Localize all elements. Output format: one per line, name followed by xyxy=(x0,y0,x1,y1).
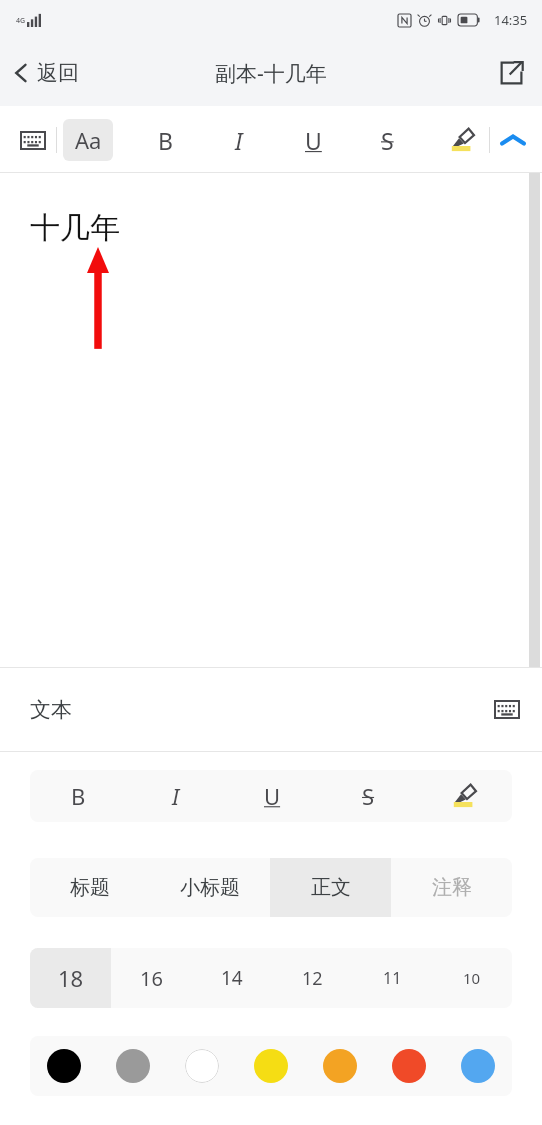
button[interactable]: S xyxy=(320,770,416,822)
button[interactable]: U xyxy=(224,770,320,822)
staticText: 4G xyxy=(16,16,26,26)
button[interactable]: 14 xyxy=(192,948,272,1008)
button[interactable]: Aa xyxy=(63,119,113,161)
staticText: U xyxy=(305,125,322,156)
staticText: 16 xyxy=(140,965,163,992)
button[interactable]: 小标题 xyxy=(150,858,270,917)
staticText: Aa xyxy=(75,125,102,155)
button[interactable]: Color 6 xyxy=(443,1036,512,1096)
button[interactable]: Color 0 xyxy=(30,1036,98,1096)
staticText: 正文 xyxy=(311,875,351,900)
button[interactable]: 注释 xyxy=(391,858,512,917)
staticText: B xyxy=(71,781,86,811)
button[interactable]: I xyxy=(217,117,261,163)
staticText: U xyxy=(264,781,281,811)
button[interactable]: Collapse xyxy=(490,117,536,163)
button[interactable]: S xyxy=(365,117,409,163)
button[interactable]: 11 xyxy=(352,948,432,1008)
button[interactable]: 10 xyxy=(432,948,512,1008)
button[interactable]: B xyxy=(30,770,127,822)
staticText: S xyxy=(362,781,375,811)
button[interactable]: Color 2 xyxy=(167,1036,236,1096)
button[interactable]: 标题 xyxy=(30,858,150,917)
staticText: 注释 xyxy=(432,875,472,900)
staticText: 10 xyxy=(463,968,481,988)
staticText: 返回 xyxy=(37,60,79,86)
staticText: 小标题 xyxy=(180,875,240,900)
button[interactable]: Highlight xyxy=(439,117,485,163)
staticText: 14 xyxy=(221,965,243,991)
button[interactable]: Keyboard xyxy=(10,117,56,163)
button[interactable]: Color 1 xyxy=(98,1036,167,1096)
staticText: S xyxy=(381,125,394,156)
staticText: 14:35 xyxy=(494,11,528,29)
staticText: B xyxy=(158,125,173,156)
staticText: I xyxy=(172,781,180,811)
staticText: 文本 xyxy=(30,697,72,723)
button[interactable]: Color 4 xyxy=(305,1036,374,1096)
staticText: 标题 xyxy=(70,875,110,900)
button[interactable]: Color 5 xyxy=(374,1036,443,1096)
staticText: 十几年 xyxy=(30,209,120,247)
staticText: 副本-十几年 xyxy=(215,59,327,88)
button[interactable]: 12 xyxy=(272,948,352,1008)
button[interactable]: 16 xyxy=(111,948,192,1008)
staticText: I xyxy=(235,125,243,156)
staticText: 12 xyxy=(302,966,323,991)
button[interactable]: 正文 xyxy=(270,858,391,917)
button[interactable]: Highlight xyxy=(416,770,512,822)
button[interactable]: Share xyxy=(480,48,542,98)
button[interactable]: I xyxy=(127,770,224,822)
staticText: 18 xyxy=(58,963,84,993)
staticText: 11 xyxy=(383,967,402,989)
button[interactable]: 返回 xyxy=(0,52,93,94)
button[interactable]: B xyxy=(143,117,187,163)
button[interactable]: Color 3 xyxy=(236,1036,305,1096)
button[interactable]: Keyboard xyxy=(472,686,542,733)
button[interactable]: 18 xyxy=(30,948,111,1008)
button[interactable]: U xyxy=(291,117,335,163)
